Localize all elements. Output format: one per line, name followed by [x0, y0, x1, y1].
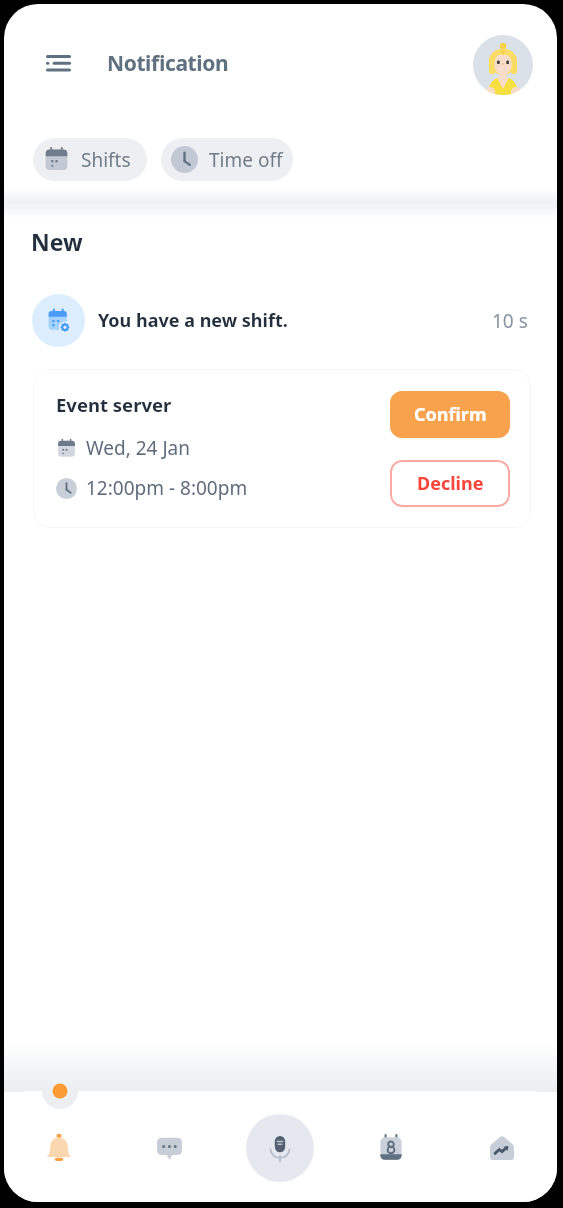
- button[interactable]: Stats: [446, 1094, 557, 1202]
- staticText: Decline: [417, 471, 484, 496]
- staticText: Wed, 24 Jan: [86, 435, 190, 461]
- button[interactable]: Decline: [390, 460, 510, 507]
- button[interactable]: Confirm: [390, 391, 510, 438]
- staticText: Confirm: [414, 402, 487, 427]
- button[interactable]: Voice: [246, 1114, 314, 1182]
- staticText: New: [31, 226, 83, 257]
- button[interactable]: You have a new shift.: [4, 294, 557, 347]
- staticText: 10 s: [492, 308, 528, 334]
- button[interactable]: Shifts: [33, 138, 147, 181]
- staticText: You have a new shift.: [98, 308, 288, 333]
- staticText: Time off: [209, 147, 283, 173]
- staticText: Event server: [56, 392, 172, 417]
- button[interactable]: Time off: [161, 138, 293, 181]
- button[interactable]: Profile: [473, 35, 533, 95]
- button[interactable]: Menu: [38, 43, 78, 83]
- staticText: 12:00pm - 8:00pm: [86, 475, 248, 501]
- button[interactable]: Notifications: [4, 1094, 114, 1202]
- staticText: Notification: [107, 49, 229, 78]
- button[interactable]: Messages: [114, 1094, 224, 1202]
- staticText: Shifts: [81, 147, 131, 173]
- button[interactable]: Calendar: [335, 1094, 446, 1202]
